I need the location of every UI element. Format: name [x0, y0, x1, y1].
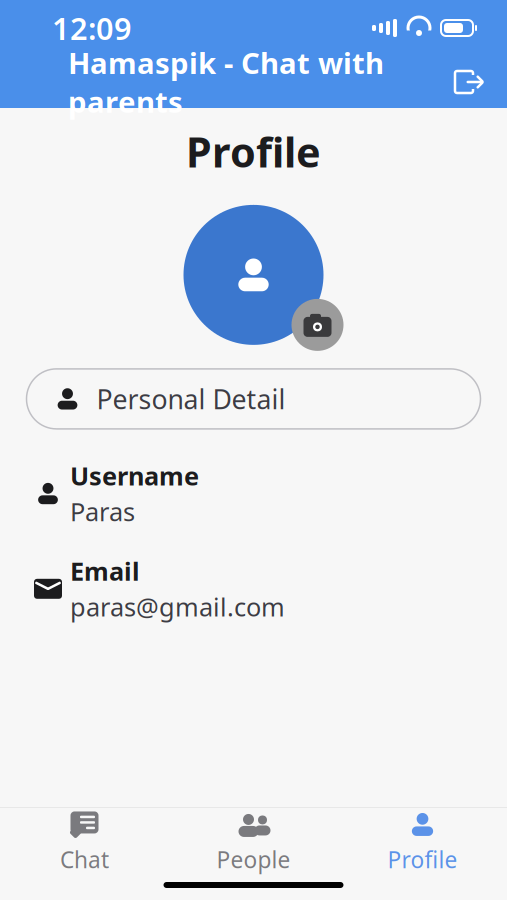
button[interactable]: Log out: [447, 60, 491, 104]
staticText: People: [216, 844, 290, 874]
button[interactable]: Profile: [338, 808, 507, 876]
staticText: Paras: [70, 494, 135, 528]
button[interactable]: Change profile photo: [291, 299, 343, 351]
staticText: Personal Detail: [96, 381, 285, 417]
staticText: Username: [70, 459, 199, 492]
staticText: paras@gmail.com: [70, 590, 285, 623]
staticText: Profile: [186, 124, 321, 179]
staticText: Profile: [387, 844, 457, 874]
button[interactable]: Personal Detail: [26, 369, 480, 429]
staticText: Hamaspik - Chat with parents: [68, 43, 384, 121]
button[interactable]: Chat: [0, 808, 169, 876]
staticText: Chat: [60, 844, 109, 874]
button[interactable]: People: [169, 808, 338, 876]
staticText: 12:09: [52, 8, 132, 48]
staticText: Email: [70, 554, 140, 588]
